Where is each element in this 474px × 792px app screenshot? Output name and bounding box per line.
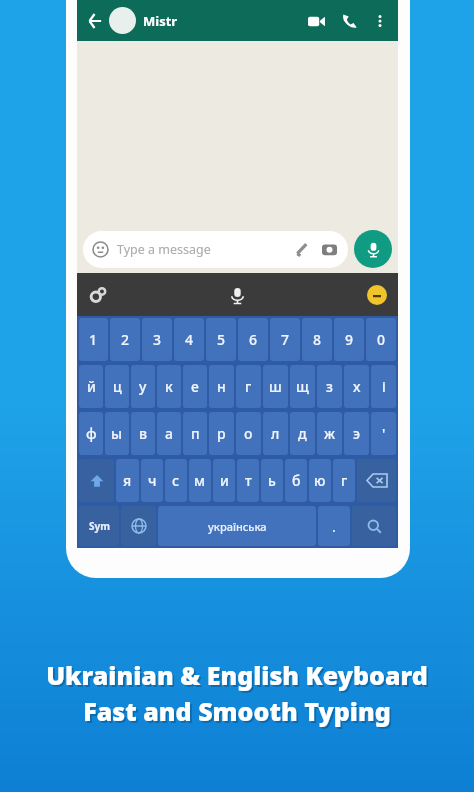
button[interactable]: Back xyxy=(84,10,106,32)
staticText: н xyxy=(217,377,226,396)
button[interactable]: а xyxy=(157,412,181,455)
button[interactable]: о xyxy=(236,412,261,455)
staticText: Fast and Smooth Typing xyxy=(85,696,393,730)
button[interactable]: ц xyxy=(105,365,129,408)
button[interactable]: ь xyxy=(261,459,283,502)
button[interactable]: л xyxy=(263,412,288,455)
staticText: ж xyxy=(324,424,336,443)
staticText: б xyxy=(292,471,301,490)
staticText: ь xyxy=(268,471,276,490)
button[interactable]: 4 xyxy=(174,318,204,361)
button[interactable]: Shift xyxy=(79,459,114,502)
staticText: 0 xyxy=(377,330,386,349)
button[interactable]: е xyxy=(183,365,207,408)
button[interactable]: Backspace xyxy=(357,459,396,502)
button[interactable]: ' xyxy=(371,412,396,455)
staticText: я xyxy=(123,471,132,490)
button[interactable]: ч xyxy=(141,459,163,502)
button[interactable]: и xyxy=(213,459,235,502)
staticText: г xyxy=(245,377,252,396)
button[interactable]: Emoji xyxy=(365,283,389,307)
button[interactable]: н xyxy=(209,365,234,408)
button[interactable]: ш xyxy=(263,365,288,408)
staticText: п xyxy=(191,424,200,443)
staticText: з xyxy=(326,377,333,396)
staticText: 4 xyxy=(185,330,194,349)
button[interactable]: я xyxy=(116,459,139,502)
staticText: у xyxy=(139,377,147,396)
button[interactable]: ф xyxy=(79,412,103,455)
staticText: Fast and Smooth Typing xyxy=(83,694,391,728)
button[interactable]: Sym xyxy=(79,506,119,546)
staticText: м xyxy=(194,471,206,490)
button[interactable]: 6 xyxy=(238,318,268,361)
button[interactable]: Type a message xyxy=(83,231,348,268)
button[interactable]: 8 xyxy=(302,318,332,361)
button[interactable]: Settings xyxy=(86,283,110,307)
button[interactable]: с xyxy=(165,459,187,502)
staticText: 5 xyxy=(217,330,226,349)
staticText: а xyxy=(165,424,173,443)
button[interactable]: 1 xyxy=(79,318,108,361)
staticText: і xyxy=(382,377,386,396)
button[interactable]: ю xyxy=(309,459,331,502)
button[interactable]: д xyxy=(290,412,315,455)
staticText: т xyxy=(245,471,252,490)
button[interactable]: 3 xyxy=(142,318,172,361)
button[interactable]: Search xyxy=(352,506,396,546)
staticText: ы xyxy=(111,424,123,443)
staticText: х xyxy=(353,377,361,396)
button[interactable]: 2 xyxy=(110,318,140,361)
button[interactable]: Camera xyxy=(320,240,339,259)
button[interactable]: р xyxy=(209,412,234,455)
staticText: 2 xyxy=(121,330,130,349)
staticText: 9 xyxy=(345,330,354,349)
button[interactable]: м xyxy=(189,459,211,502)
button[interactable]: к xyxy=(157,365,181,408)
staticText: г xyxy=(341,471,348,490)
button[interactable]: й xyxy=(79,365,103,408)
button[interactable]: і xyxy=(371,365,396,408)
button[interactable]: г xyxy=(333,459,355,502)
button[interactable]: в xyxy=(131,412,155,455)
staticText: 3 xyxy=(153,330,162,349)
button[interactable]: Attach xyxy=(292,240,311,259)
staticText: 1 xyxy=(89,330,98,349)
staticText: е xyxy=(191,377,199,396)
button[interactable]: у xyxy=(131,365,155,408)
button[interactable]: . xyxy=(318,506,350,546)
button[interactable]: More options xyxy=(369,10,391,32)
button[interactable]: Video call xyxy=(303,8,329,34)
staticText: э xyxy=(353,424,361,443)
staticText: ф xyxy=(86,424,97,443)
staticText: українська xyxy=(208,519,267,534)
button[interactable]: Call xyxy=(337,8,363,34)
button[interactable]: э xyxy=(344,412,369,455)
button[interactable]: 0 xyxy=(366,318,396,361)
button[interactable]: Voice input xyxy=(222,280,252,310)
staticText: с xyxy=(172,471,180,490)
staticText: . xyxy=(332,517,336,536)
staticText: д xyxy=(298,424,307,443)
staticText: Ukrainian & English Keyboard xyxy=(46,658,428,692)
button[interactable]: п xyxy=(183,412,207,455)
button[interactable]: т xyxy=(237,459,259,502)
staticText: ' xyxy=(382,424,386,443)
button[interactable]: 9 xyxy=(334,318,364,361)
button[interactable]: ы xyxy=(105,412,129,455)
button[interactable]: 5 xyxy=(206,318,236,361)
button[interactable]: х xyxy=(344,365,369,408)
button[interactable]: Change language xyxy=(121,506,156,546)
button[interactable]: з xyxy=(317,365,342,408)
button[interactable]: г xyxy=(236,365,261,408)
staticText: к xyxy=(165,377,173,396)
button[interactable]: щ xyxy=(290,365,315,408)
button[interactable]: українська xyxy=(158,506,316,546)
button[interactable]: Voice message xyxy=(354,230,392,268)
staticText: о xyxy=(244,424,253,443)
staticText: Type a message xyxy=(117,241,211,258)
button[interactable]: ж xyxy=(317,412,342,455)
button[interactable]: 7 xyxy=(270,318,300,361)
button[interactable]: б xyxy=(285,459,307,502)
staticText: р xyxy=(217,424,226,443)
